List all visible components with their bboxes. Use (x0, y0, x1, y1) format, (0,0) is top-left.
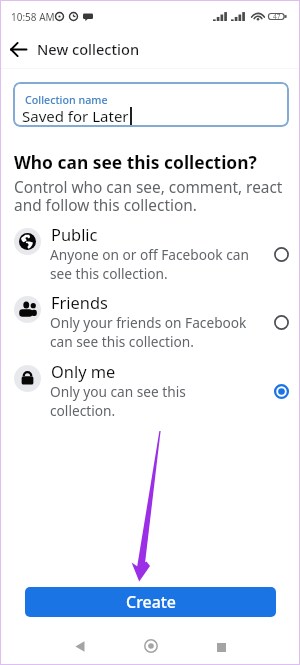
button[interactable]: Friends (1, 291, 299, 353)
staticText: New collection (37, 39, 140, 59)
staticText: Anyone on or off Facebook can see this c… (50, 245, 249, 283)
button[interactable]: Back (4, 35, 32, 63)
button[interactable]: Only me (1, 360, 299, 422)
button[interactable]: Back (66, 632, 94, 660)
staticText: Public (51, 223, 98, 245)
button[interactable]: Recents (207, 633, 235, 661)
button[interactable]: Create (25, 587, 276, 617)
staticText: Only you can see this collection. (50, 382, 186, 420)
staticText: Create (126, 591, 176, 613)
button[interactable]: Collection name (13, 82, 289, 127)
staticText: Control who can see, comment, react and … (14, 177, 283, 216)
staticText: Only me (51, 360, 116, 382)
staticText: Saved for Later (22, 106, 129, 126)
staticText: Friends (51, 291, 108, 313)
staticText: Who can see this collection? (14, 150, 257, 174)
staticText: 47 (273, 12, 281, 21)
button[interactable]: Public (1, 223, 299, 285)
staticText: 10:58 AM (11, 10, 55, 23)
staticText: Only your friends on Facebook can see th… (50, 313, 247, 351)
staticText: Collection name (25, 93, 108, 108)
button[interactable]: Home (137, 632, 165, 660)
